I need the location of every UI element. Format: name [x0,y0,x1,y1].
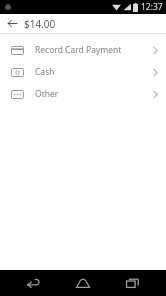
button[interactable]: Back [0,14,24,33]
staticText: $14.00 [24,17,56,31]
staticText: Other [35,88,59,100]
button[interactable]: Cash [0,61,166,83]
staticText: 12:37 [141,1,163,13]
button[interactable]: Back [19,270,49,296]
button[interactable]: Recent apps [117,270,147,296]
staticText: Record Card Payment [35,44,122,56]
button[interactable]: Other [0,83,166,105]
staticText: Cash [35,66,55,78]
button[interactable]: Record Card Payment [0,39,166,61]
button[interactable]: Home [68,270,98,296]
